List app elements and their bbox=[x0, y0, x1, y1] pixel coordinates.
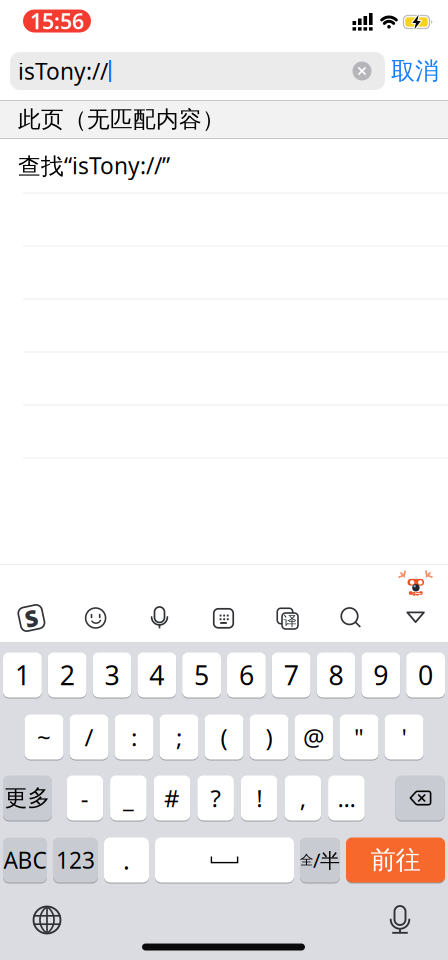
staticText: ... bbox=[337, 782, 355, 814]
button[interactable]: - bbox=[66, 775, 103, 821]
button[interactable]: ABC bbox=[3, 837, 47, 883]
staticText: # bbox=[164, 782, 180, 814]
button[interactable]: 1 bbox=[3, 652, 42, 698]
button[interactable]: 3 bbox=[93, 652, 131, 698]
staticText: - bbox=[81, 782, 89, 814]
staticText: 4 bbox=[149, 657, 164, 693]
staticText: ) bbox=[265, 721, 272, 753]
staticText: " bbox=[354, 721, 364, 753]
button[interactable]: 查找“isTony://” bbox=[0, 139, 448, 192]
button[interactable]: ... bbox=[328, 775, 365, 821]
button[interactable]: 0 bbox=[406, 652, 445, 698]
button[interactable]: 8 bbox=[317, 652, 355, 698]
button[interactable]: Search bbox=[341, 608, 361, 628]
button[interactable]: # bbox=[154, 775, 190, 821]
button[interactable]: 9 bbox=[361, 652, 400, 698]
button[interactable]: 2 bbox=[48, 652, 87, 698]
staticText: . bbox=[123, 843, 130, 877]
staticText: 7 bbox=[284, 657, 299, 693]
button[interactable]: Space bbox=[155, 837, 294, 883]
staticText: 8 bbox=[328, 657, 343, 693]
staticText: 3 bbox=[104, 657, 119, 693]
button[interactable]: , bbox=[284, 775, 321, 821]
staticText: ; bbox=[176, 721, 182, 753]
staticText: 5 bbox=[194, 657, 209, 693]
button[interactable]: ! bbox=[241, 775, 277, 821]
button[interactable]: ) bbox=[249, 714, 288, 760]
button[interactable]: 全 bbox=[300, 837, 340, 883]
staticText: 更多 bbox=[4, 784, 50, 812]
button[interactable]: _ bbox=[110, 775, 147, 821]
staticText: @ bbox=[303, 721, 325, 753]
button[interactable]: Voice input bbox=[150, 607, 168, 629]
button[interactable]: 4 bbox=[137, 652, 176, 698]
button[interactable]: Translate bbox=[277, 608, 298, 629]
button[interactable]: ? bbox=[197, 775, 234, 821]
button[interactable]: Dictation bbox=[387, 905, 413, 935]
staticText: : bbox=[131, 721, 137, 753]
staticText: ~ bbox=[37, 721, 51, 753]
staticText: 15:56 bbox=[30, 7, 84, 35]
staticText: 前往 bbox=[370, 844, 420, 875]
staticText: 1 bbox=[15, 657, 30, 693]
staticText: 0 bbox=[418, 657, 433, 693]
staticText: _ bbox=[123, 782, 134, 814]
staticText: / bbox=[84, 721, 93, 753]
button[interactable]: isTony:// bbox=[10, 52, 385, 90]
button[interactable]: " bbox=[339, 714, 378, 760]
button[interactable]: 6 bbox=[227, 652, 266, 698]
button[interactable]: . bbox=[104, 837, 149, 883]
staticText: 6 bbox=[239, 657, 254, 693]
staticText: 查找“isTony://” bbox=[18, 150, 170, 180]
button[interactable]: Dismiss keyboard bbox=[406, 611, 425, 623]
button[interactable]: Keyboard settings bbox=[213, 608, 233, 628]
staticText: 此页（无匹配内容） bbox=[18, 106, 225, 133]
button[interactable]: ; bbox=[159, 714, 198, 760]
staticText: ! bbox=[256, 782, 262, 814]
staticText: 9 bbox=[373, 657, 388, 693]
staticText: /半 bbox=[313, 847, 340, 873]
staticText: ? bbox=[211, 782, 221, 814]
staticText: ABC bbox=[3, 845, 46, 875]
button[interactable]: 7 bbox=[272, 652, 311, 698]
button[interactable]: 前往 bbox=[346, 837, 445, 883]
button[interactable]: 5 bbox=[182, 652, 221, 698]
button[interactable]: Next keyboard bbox=[32, 905, 62, 935]
button[interactable]: ( bbox=[204, 714, 243, 760]
button[interactable]: 取消 bbox=[391, 56, 439, 86]
button[interactable]: @ bbox=[294, 714, 333, 760]
button[interactable]: 更多 bbox=[3, 775, 52, 821]
staticText: 2 bbox=[60, 657, 75, 693]
button[interactable]: 123 bbox=[53, 837, 98, 883]
button[interactable]: Emoji bbox=[85, 607, 107, 629]
staticText: 译 bbox=[283, 613, 296, 629]
button[interactable]: / bbox=[69, 714, 108, 760]
staticText: ' bbox=[401, 721, 406, 753]
button[interactable]: ~ bbox=[24, 714, 63, 760]
staticText: , bbox=[300, 782, 306, 814]
button[interactable]: Sogou bbox=[17, 603, 45, 633]
button[interactable]: ' bbox=[384, 714, 423, 760]
staticText: 全 bbox=[300, 852, 313, 868]
staticText: isTony:// bbox=[18, 56, 108, 86]
button[interactable]: Clear text bbox=[352, 61, 371, 80]
staticText: S bbox=[25, 603, 38, 633]
button[interactable]: Delete bbox=[395, 775, 444, 821]
button[interactable]: : bbox=[114, 714, 153, 760]
staticText: 取消 bbox=[391, 56, 439, 86]
staticText: 123 bbox=[56, 845, 95, 875]
staticText: ( bbox=[220, 721, 227, 753]
